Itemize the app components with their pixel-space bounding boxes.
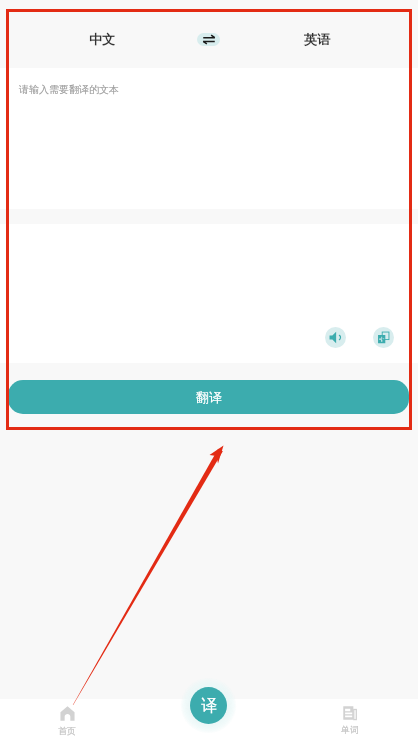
staticText: 首页 (58, 725, 76, 736)
button[interactable]: 首页 (47, 699, 87, 739)
staticText: 英语 (304, 31, 330, 47)
button[interactable]: 请输入需要翻译的文本 (0, 68, 418, 209)
button[interactable]: 中文 (7, 10, 197, 68)
button[interactable]: Speak translation (325, 327, 346, 348)
button[interactable]: Swap languages (197, 33, 220, 46)
staticText: 翻译 (196, 389, 222, 405)
staticText: 单词 (341, 724, 359, 735)
button[interactable]: 翻译 (8, 380, 409, 414)
staticText: 中文 (89, 31, 115, 47)
button[interactable]: 单词 (330, 699, 370, 739)
staticText: 译 (201, 696, 217, 716)
staticText: 请输入需要翻译的文本 (19, 83, 119, 96)
button[interactable]: Copy translation (373, 327, 394, 348)
button[interactable]: Translate (190, 687, 227, 724)
button[interactable]: 英语 (220, 10, 413, 68)
